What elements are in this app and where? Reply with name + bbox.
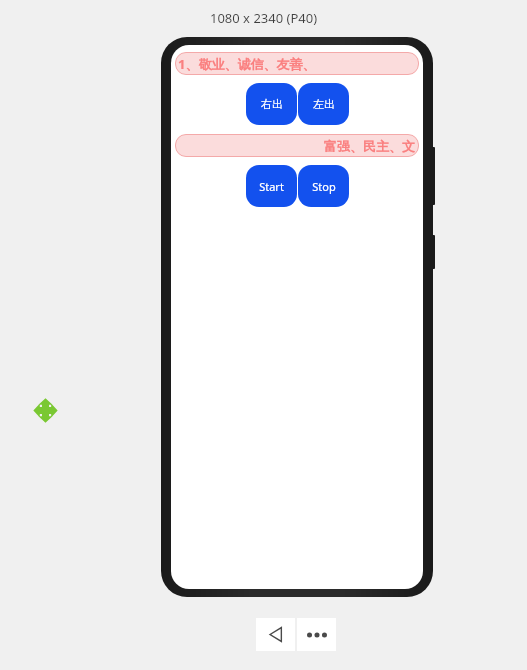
staticText: 右出 [261, 97, 283, 111]
staticText: 1、敬业、诚信、友善、 [178, 55, 316, 73]
staticText: Start [259, 179, 284, 194]
staticText: Stop [312, 179, 336, 194]
button[interactable]: 富强、民主、文 [175, 134, 419, 157]
button[interactable]: Move [32, 397, 59, 424]
button[interactable]: Stop [298, 165, 349, 207]
staticText: 左出 [313, 97, 335, 111]
staticText: 1080 x 2340 (P40) [210, 9, 318, 27]
button[interactable]: Back [256, 618, 295, 651]
button[interactable]: 左出 [298, 83, 349, 125]
button[interactable]: 1、敬业、诚信、友善、 [175, 52, 419, 75]
staticText: 富强、民主、文 [324, 138, 415, 154]
button[interactable]: 右出 [246, 83, 297, 125]
button[interactable]: Start [246, 165, 297, 207]
button[interactable]: More options [297, 618, 336, 651]
